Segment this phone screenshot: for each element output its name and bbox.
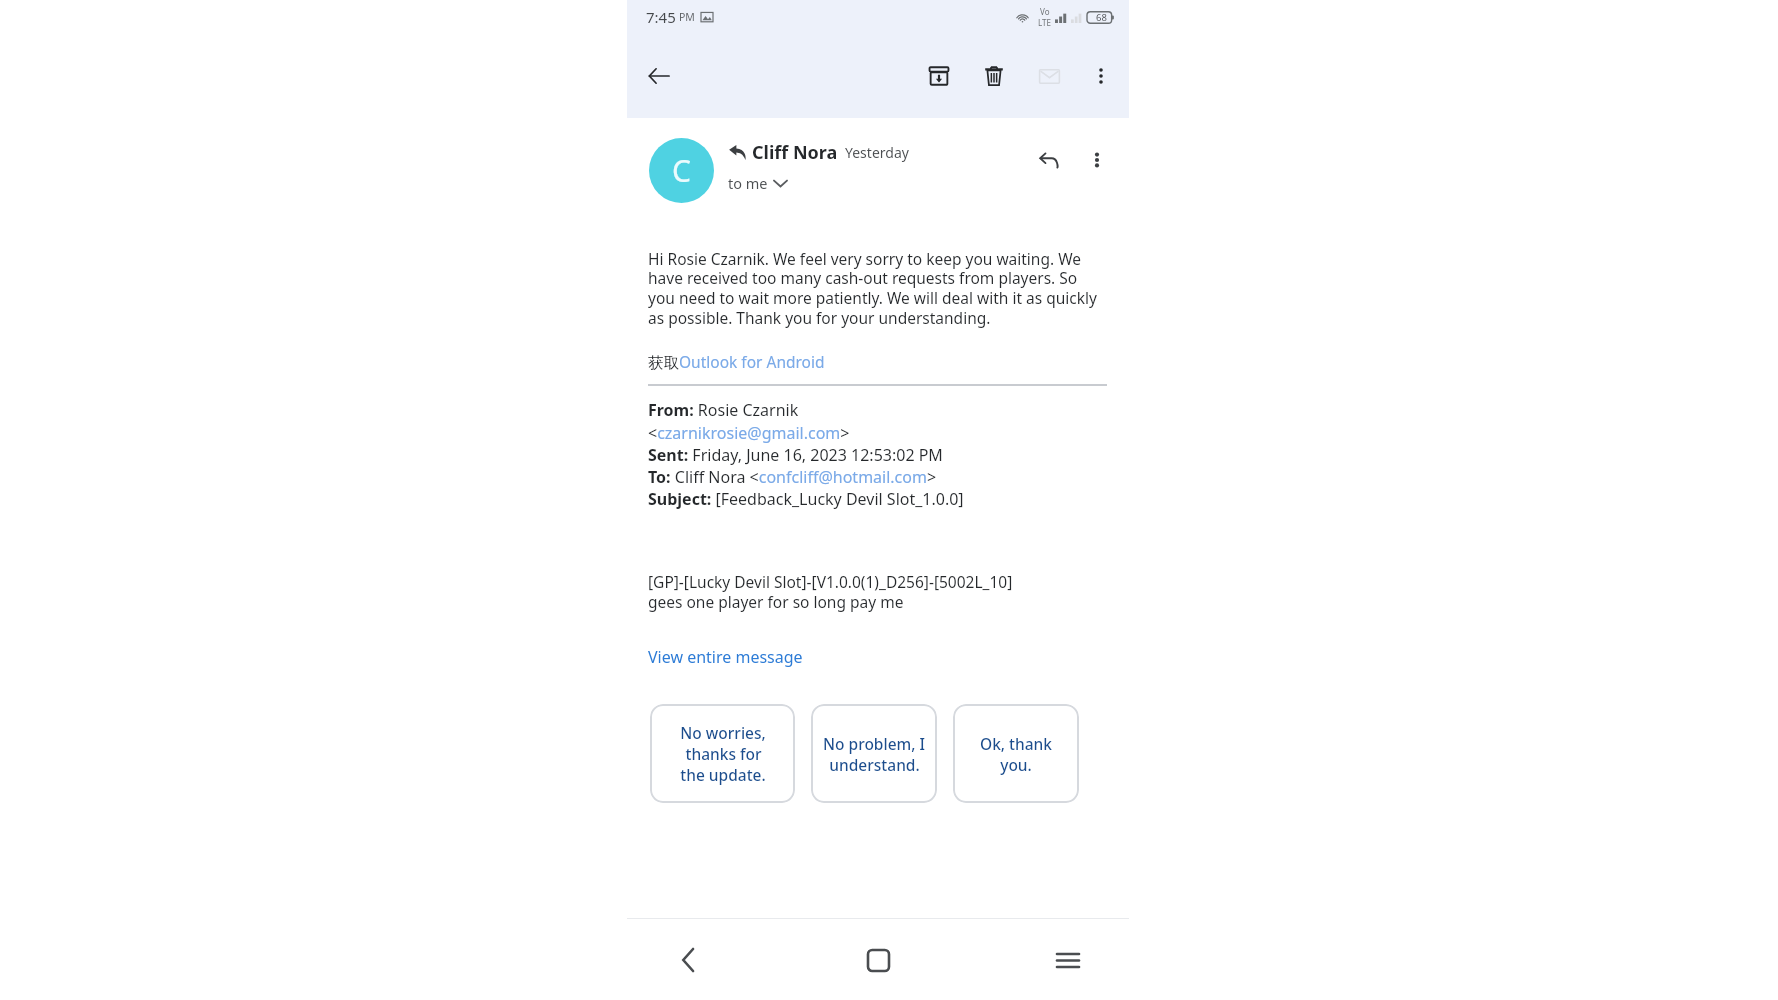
staticText: [GP]-[Lucky Devil Slot]-[V1.0.0(1)_D256]… [648, 571, 1013, 612]
staticText: No problem, I [823, 733, 925, 754]
staticText: you. [1000, 754, 1032, 775]
button[interactable]: View entire message [648, 646, 803, 668]
staticText: Yesterday [845, 143, 909, 162]
button[interactable]: Back [635, 52, 683, 100]
staticText: PM [679, 10, 695, 24]
button[interactable]: Mark unread [1025, 52, 1073, 100]
button[interactable]: Ok, thank [953, 704, 1079, 803]
staticText: Ok, thank [980, 733, 1052, 754]
staticText: the update. [680, 764, 766, 785]
staticText: Cliff Nora [752, 140, 838, 165]
staticText: thanks for [685, 743, 762, 764]
staticText: 68 [1096, 11, 1107, 24]
button[interactable]: Archive [915, 52, 963, 100]
staticText: View entire message [648, 646, 803, 668]
staticText: Vo [1040, 6, 1050, 17]
staticText: LTE [1038, 17, 1051, 28]
button[interactable]: to me [728, 173, 791, 193]
staticText: 7:45 [646, 7, 676, 27]
button[interactable]: Home [851, 933, 905, 987]
button[interactable]: More options [1077, 52, 1125, 100]
button[interactable]: Delete [970, 52, 1018, 100]
button[interactable]: No worries, [650, 704, 795, 803]
staticText: understand. [829, 754, 920, 775]
staticText: Hi Rosie Czarnik. We feel very sorry to … [648, 248, 1107, 329]
button[interactable]: More options [1075, 138, 1119, 182]
staticText: to me [728, 173, 768, 193]
staticText: No worries, [680, 722, 766, 743]
button[interactable]: Sender avatar [649, 138, 714, 203]
button[interactable]: Reply [1027, 138, 1071, 182]
button[interactable]: Recent apps [1041, 933, 1095, 987]
staticText: From: Rosie Czarnik <czarnikrosie@gmail.… [648, 399, 964, 509]
button[interactable]: 获取Outlook for Android [648, 351, 825, 372]
button[interactable]: No problem, I [811, 704, 937, 803]
staticText: C [672, 150, 691, 191]
button[interactable]: Back [661, 933, 715, 987]
